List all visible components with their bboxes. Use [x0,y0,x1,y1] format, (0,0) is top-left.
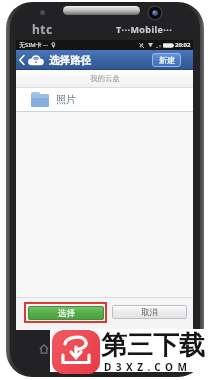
staticText: T···Mobile··· [116,23,173,35]
staticText: 取消 [141,307,158,318]
button[interactable]: 选择 [28,306,104,320]
staticText: htc [32,21,53,37]
staticText: 新建 [159,55,175,65]
button[interactable]: 取消 [112,305,187,319]
button[interactable] [52,330,100,374]
staticText: D3XZ.COM [104,360,192,374]
staticText: 无SIM卡 ··· ♀ [19,41,56,49]
button[interactable]: 照片 [16,88,193,111]
staticText: 20:02 [175,41,191,49]
staticText: 选择 [58,308,75,319]
staticText: 照片 [56,93,76,106]
staticText: 第三下载 [101,329,205,362]
button[interactable]: 新建 [152,53,181,67]
staticText: 我的云盘 [90,74,120,83]
staticText: 选择路径 [49,54,91,67]
